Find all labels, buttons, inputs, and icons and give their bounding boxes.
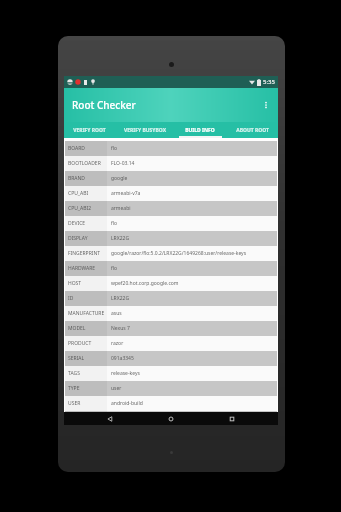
button[interactable]: VERIFY ROOT xyxy=(64,122,115,138)
staticText: user xyxy=(111,385,122,392)
button[interactable]: VERIFY BUSYBOX xyxy=(115,122,174,138)
staticText: 5:35 xyxy=(263,78,275,86)
staticText: ABOUT ROOT xyxy=(236,127,269,134)
staticText: TAGS xyxy=(68,370,80,377)
button[interactable]: DISPLAY xyxy=(65,231,277,246)
staticText: USER xyxy=(68,400,81,407)
button[interactable]: More options xyxy=(254,93,278,117)
button[interactable]: CODENAME xyxy=(65,411,277,412)
staticText: 091a3345 xyxy=(111,355,134,362)
staticText: FINGERPRINT xyxy=(68,250,101,257)
staticText: flo xyxy=(111,145,118,152)
button[interactable]: MANUFACTURER xyxy=(65,306,277,321)
staticText: google xyxy=(111,175,128,182)
staticText: BOOTLOADER xyxy=(68,160,101,167)
button[interactable]: BOARD xyxy=(65,141,277,156)
button[interactable]: TYPE xyxy=(65,381,277,396)
staticText: ID xyxy=(68,295,74,302)
button[interactable]: DEVICE xyxy=(65,216,277,231)
staticText: Nexus 7 xyxy=(111,325,130,332)
staticText: LRX22G xyxy=(111,235,130,242)
button[interactable]: Recent apps xyxy=(217,412,247,425)
staticText: release-keys xyxy=(111,370,140,377)
staticText: PRODUCT xyxy=(68,340,92,347)
staticText: BUILD INFO xyxy=(185,127,215,134)
staticText: FLO-03.14 xyxy=(111,160,135,167)
staticText: armeabi xyxy=(111,205,131,212)
button[interactable]: CPU_ABI2 xyxy=(65,201,277,216)
staticText: VERIFY ROOT xyxy=(73,127,106,134)
staticText: asus xyxy=(111,310,122,317)
staticText: CPU_ABI xyxy=(68,190,89,197)
staticText: wpef20.hot.corp.google.com xyxy=(111,280,179,287)
button[interactable]: TAGS xyxy=(65,366,277,381)
staticText: google/razor/flo:5.0.2/LRX22G/1649268:us… xyxy=(111,250,247,257)
button[interactable]: FINGERPRINT xyxy=(65,246,277,261)
staticText: BOARD xyxy=(68,145,86,152)
staticText: LRX22G xyxy=(111,295,130,302)
staticText: android-build xyxy=(111,400,143,407)
button[interactable]: BOOTLOADER xyxy=(65,156,277,171)
staticText: DISPLAY xyxy=(68,235,88,242)
button[interactable]: Back xyxy=(95,412,125,425)
button[interactable]: USER xyxy=(65,396,277,411)
staticText: razor xyxy=(111,340,124,347)
button[interactable]: SERIAL xyxy=(65,351,277,366)
staticText: MANUFACTURER xyxy=(68,310,107,317)
button[interactable]: HOST xyxy=(65,276,277,291)
staticText: DEVICE xyxy=(68,220,86,227)
staticText: SERIAL xyxy=(68,355,85,362)
button[interactable]: Home xyxy=(156,412,186,425)
staticText: flo xyxy=(111,220,118,227)
staticText: BRAND xyxy=(68,175,86,182)
button[interactable]: BUILD INFO xyxy=(174,122,226,138)
staticText: VERIFY BUSYBOX xyxy=(124,127,166,134)
button[interactable]: PRODUCT xyxy=(65,336,277,351)
staticText: armeabi-v7a xyxy=(111,190,141,197)
staticText: TYPE xyxy=(68,385,80,392)
staticText: Root Checker xyxy=(72,98,136,112)
staticText: HARDWARE xyxy=(68,265,96,272)
staticText: HOST xyxy=(68,280,82,287)
staticText: flo xyxy=(111,265,118,272)
staticText: MODEL xyxy=(68,325,86,332)
staticText: CPU_ABI2 xyxy=(68,205,92,212)
button[interactable]: HARDWARE xyxy=(65,261,277,276)
button[interactable]: ID xyxy=(65,291,277,306)
button[interactable]: CPU_ABI xyxy=(65,186,277,201)
button[interactable]: BRAND xyxy=(65,171,277,186)
button[interactable]: MODEL xyxy=(65,321,277,336)
button[interactable]: ABOUT ROOT xyxy=(226,122,278,138)
